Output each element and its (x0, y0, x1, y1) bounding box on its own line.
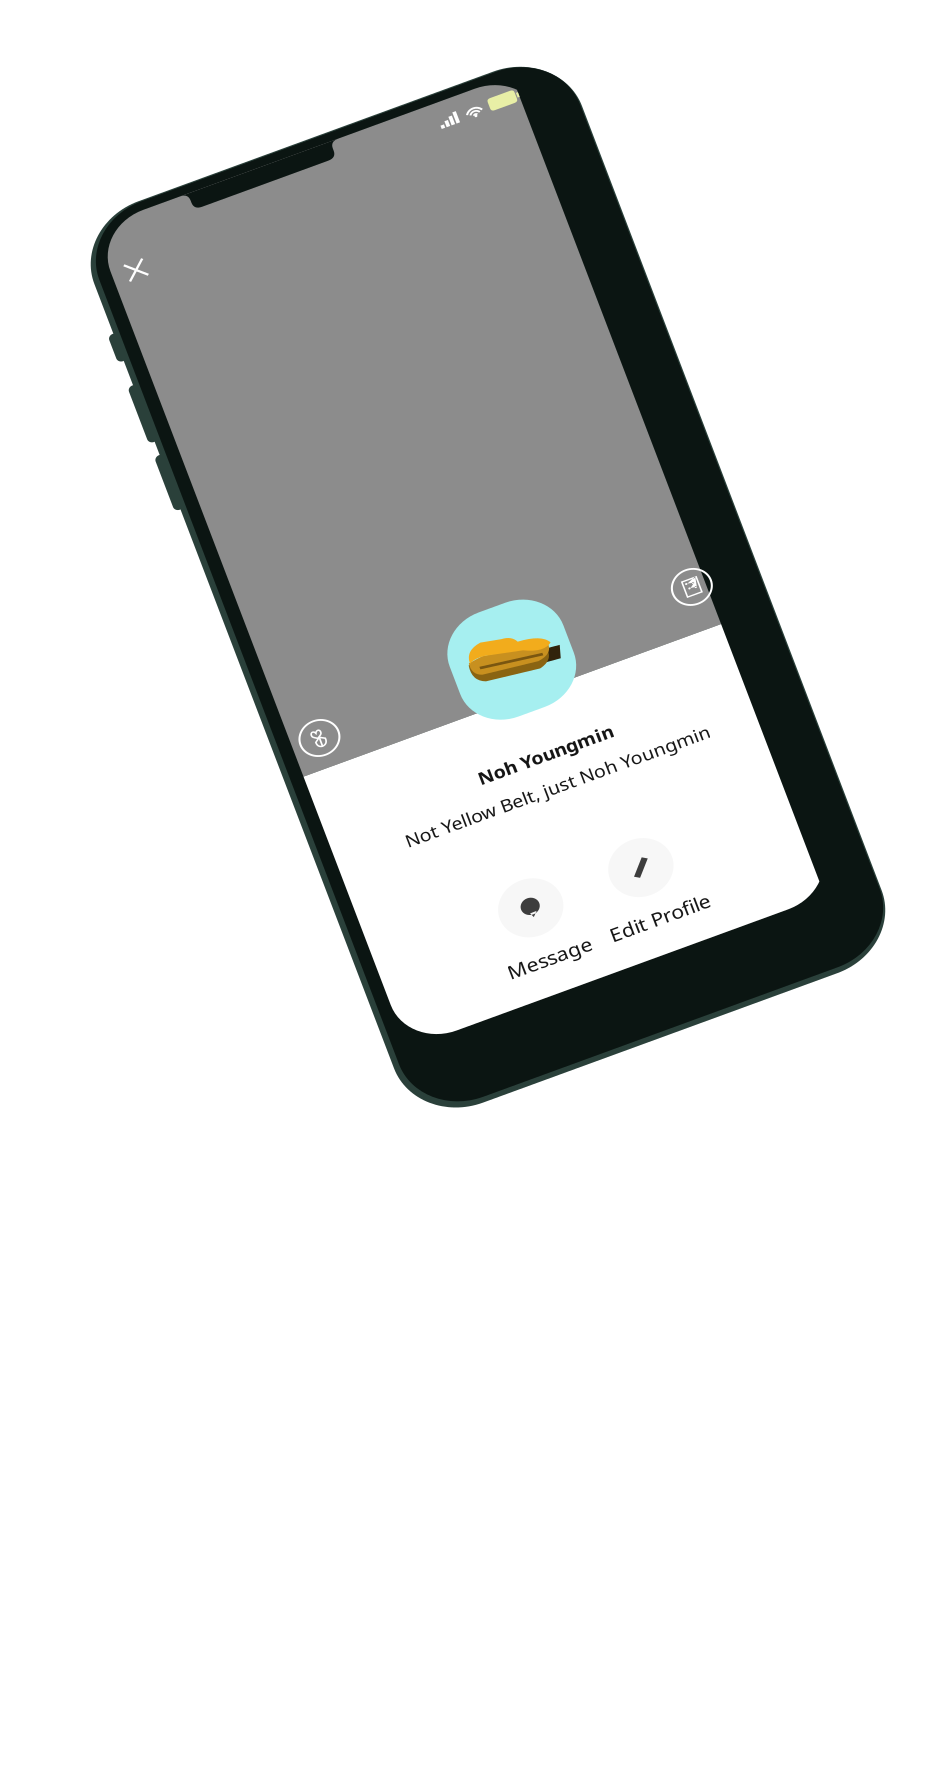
staticText: Noh Youngmin (133, 590, 250, 611)
button[interactable]: Edit Profile (188, 702, 275, 790)
staticText: Not Yellow Belt, just Noh Youngmin (59, 621, 324, 642)
